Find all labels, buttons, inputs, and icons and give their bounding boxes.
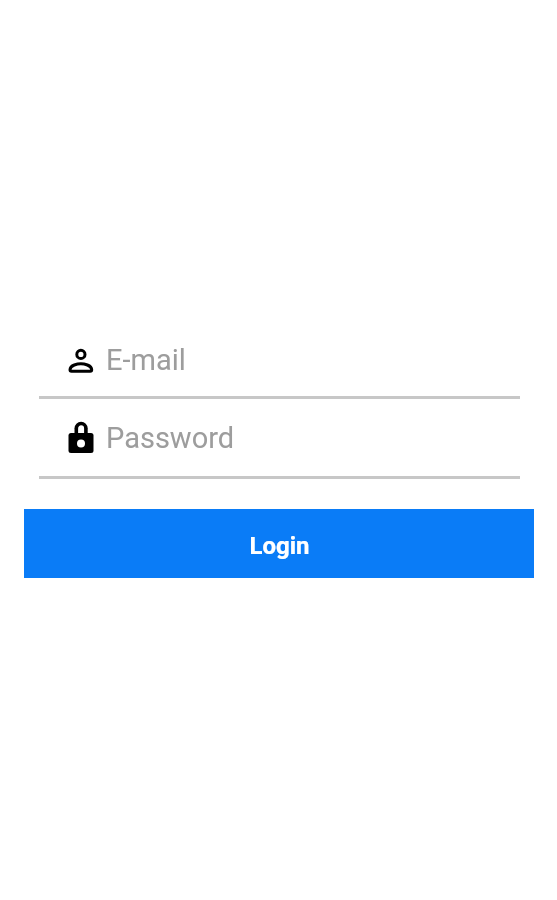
button[interactable]: Password xyxy=(39,418,520,480)
staticText: E-mail xyxy=(106,343,186,377)
button[interactable]: Login xyxy=(24,509,534,578)
staticText: Login xyxy=(249,532,310,560)
button[interactable]: E-mail xyxy=(39,340,520,400)
staticText: Password xyxy=(106,421,235,455)
